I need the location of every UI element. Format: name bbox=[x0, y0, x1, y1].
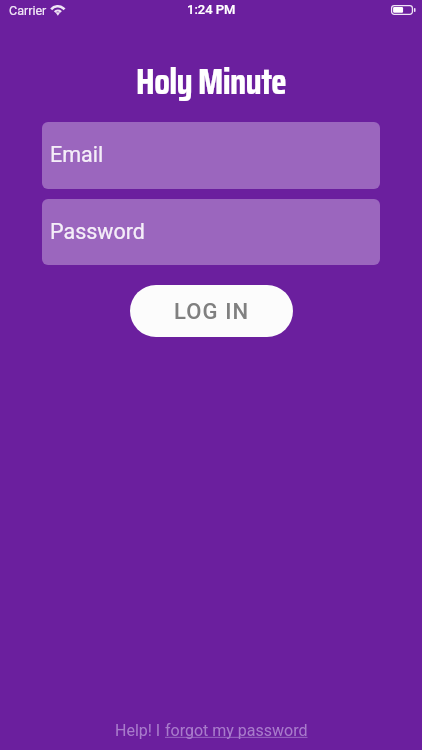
other: Wi-Fi signal bbox=[50, 0, 67, 18]
button[interactable]: Email bbox=[42, 122, 380, 189]
button[interactable]: LOG IN bbox=[130, 285, 293, 337]
staticText: Carrier bbox=[9, 3, 47, 18]
staticText: Password bbox=[50, 219, 145, 244]
staticText: 1:24 PM bbox=[187, 2, 236, 17]
staticText: Holy Minute bbox=[0, 53, 422, 110]
other: Battery bbox=[391, 5, 416, 16]
staticText: LOG IN bbox=[174, 299, 250, 325]
button[interactable]: forgot my password bbox=[165, 721, 308, 740]
staticText: Email bbox=[50, 142, 104, 167]
button[interactable]: Password bbox=[42, 199, 380, 265]
staticText: Help! I bbox=[115, 721, 165, 740]
